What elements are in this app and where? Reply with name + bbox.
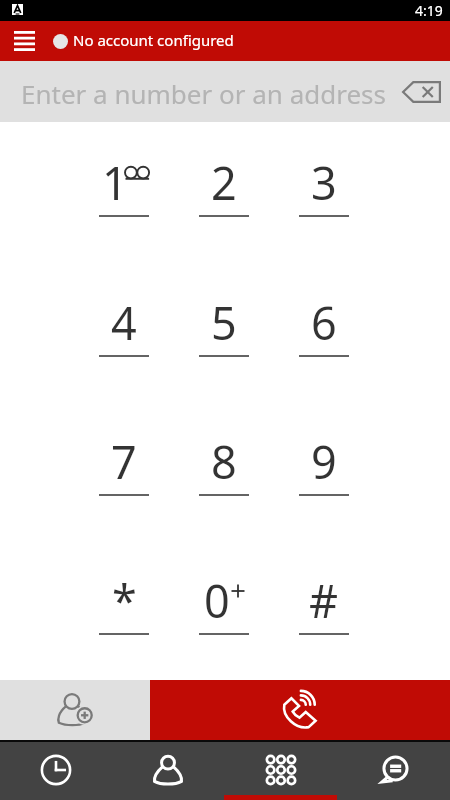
staticText: 9 (311, 431, 337, 487)
button[interactable] (174, 561, 274, 673)
button[interactable] (74, 422, 174, 534)
staticText: 5 (211, 292, 237, 348)
staticText: No account configured (73, 30, 234, 50)
staticText: # (309, 570, 339, 626)
button[interactable]: Call (150, 680, 450, 740)
staticText: 8 (211, 431, 237, 487)
staticText: 0 (204, 570, 230, 626)
button[interactable]: Add contact (0, 680, 150, 740)
staticText: 6 (311, 292, 337, 348)
staticText: 3 (311, 152, 337, 208)
button[interactable] (174, 422, 274, 534)
button[interactable] (174, 283, 274, 395)
button[interactable] (274, 422, 374, 534)
button[interactable] (74, 143, 174, 255)
staticText: Enter a number or an address (21, 76, 387, 111)
button[interactable] (74, 561, 174, 673)
button[interactable]: Contacts (112, 742, 224, 800)
button[interactable]: Recent calls (0, 742, 112, 800)
button[interactable]: Open navigation menu (0, 21, 48, 61)
staticText: * (112, 570, 137, 626)
button[interactable] (74, 283, 174, 395)
button[interactable] (274, 283, 374, 395)
staticText: 4 (111, 292, 137, 348)
staticText: 1 (102, 152, 128, 208)
button[interactable]: Backspace (392, 61, 450, 122)
button[interactable] (274, 561, 374, 673)
staticText: 2 (211, 152, 237, 208)
staticText: 7 (111, 431, 137, 487)
button[interactable]: Messages (337, 742, 450, 800)
button[interactable] (274, 143, 374, 255)
button[interactable] (174, 143, 274, 255)
staticText: 4:19 (415, 1, 443, 20)
button[interactable]: Dialpad (224, 742, 337, 800)
